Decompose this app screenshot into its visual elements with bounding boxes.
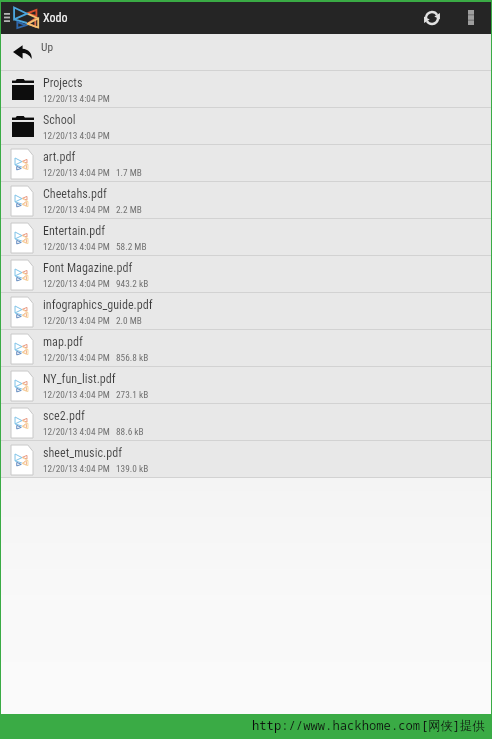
staticText: 2.2 MB — [116, 204, 142, 215]
staticText: 12/20/13 4:04 PM — [43, 463, 110, 474]
staticText: 273.1 kB — [116, 389, 149, 400]
button[interactable]: art.pdf — [1, 145, 491, 182]
button[interactable]: NY_fun_list.pdf — [1, 367, 491, 404]
button[interactable]: Entertain.pdf — [1, 219, 491, 256]
staticText: sce2.pdf — [43, 409, 85, 423]
staticText: 12/20/13 4:04 PM — [43, 389, 110, 400]
staticText: Xodo — [43, 11, 68, 25]
staticText: Projects — [43, 76, 83, 90]
button[interactable]: sheet_music.pdf — [1, 441, 491, 478]
button[interactable]: infographics_guide.pdf — [1, 293, 491, 330]
staticText: 12/20/13 4:04 PM — [43, 204, 110, 215]
button[interactable]: sce2.pdf — [1, 404, 491, 441]
button[interactable]: School — [1, 108, 491, 145]
staticText: 12/20/13 4:04 PM — [43, 167, 110, 178]
staticText: 58.2 MB — [116, 241, 147, 252]
staticText: sheet_music.pdf — [43, 446, 122, 460]
button[interactable]: Menu — [1, 2, 12, 34]
button[interactable]: Projects — [1, 71, 491, 108]
staticText: 12/20/13 4:04 PM — [43, 315, 110, 326]
button[interactable]: Refresh — [417, 3, 457, 34]
staticText: Up — [41, 40, 54, 53]
staticText: infographics_guide.pdf — [43, 298, 153, 312]
staticText: art.pdf — [43, 150, 76, 164]
staticText: 856.8 kB — [116, 352, 149, 363]
staticText: School — [43, 113, 76, 127]
staticText: 88.6 kB — [116, 426, 144, 437]
staticText: 139.0 kB — [116, 463, 149, 474]
button[interactable]: map.pdf — [1, 330, 491, 367]
staticText: 12/20/13 4:04 PM — [43, 130, 110, 141]
button[interactable]: More options — [457, 3, 489, 34]
staticText: [网侠]提供 — [421, 717, 485, 734]
staticText: Cheetahs.pdf — [43, 187, 107, 201]
button[interactable]: Up — [1, 34, 491, 71]
staticText: 12/20/13 4:04 PM — [43, 352, 110, 363]
staticText: Entertain.pdf — [43, 224, 106, 238]
staticText: 943.2 kB — [116, 278, 149, 289]
staticText: 1.7 MB — [116, 167, 142, 178]
staticText: 12/20/13 4:04 PM — [43, 241, 110, 252]
button[interactable]: Font Magazine.pdf — [1, 256, 491, 293]
button[interactable]: Cheetahs.pdf — [1, 182, 491, 219]
staticText: NY_fun_list.pdf — [43, 372, 116, 386]
staticText: 12/20/13 4:04 PM — [43, 426, 110, 437]
staticText: 2.0 MB — [116, 315, 142, 326]
staticText: 12/20/13 4:04 PM — [43, 93, 110, 104]
staticText: 12/20/13 4:04 PM — [43, 278, 110, 289]
staticText: http://www.hackhome.com — [252, 717, 421, 734]
staticText: Font Magazine.pdf — [43, 261, 133, 275]
staticText: map.pdf — [43, 335, 83, 349]
